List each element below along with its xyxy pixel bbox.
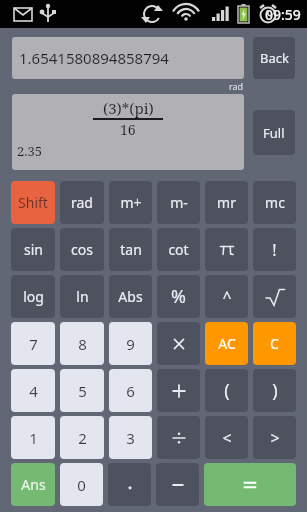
- staticText: 1.6541580894858794: [19, 48, 169, 68]
- button[interactable]: >: [253, 416, 296, 459]
- button[interactable]: 3: [109, 416, 152, 459]
- button[interactable]: Shift: [11, 181, 55, 224]
- button[interactable]: tan: [109, 228, 152, 271]
- staticText: cos: [71, 240, 93, 259]
- button[interactable]: ): [253, 369, 296, 412]
- staticText: 7: [29, 334, 38, 354]
- staticText: 8: [78, 334, 87, 354]
- staticText: 9: [126, 334, 135, 354]
- staticText: 4: [29, 381, 38, 401]
- staticText: mr: [217, 193, 236, 212]
- button[interactable]: AC: [205, 322, 248, 365]
- button[interactable]: rad: [60, 181, 104, 224]
- staticText: Shift: [18, 193, 48, 212]
- staticText: 6: [126, 381, 135, 401]
- staticText: Back: [260, 49, 289, 67]
- staticText: %: [171, 284, 186, 309]
- staticText: Full: [263, 124, 285, 142]
- button[interactable]: mc: [253, 181, 296, 224]
- button[interactable]: 5: [60, 369, 104, 412]
- button[interactable]: (: [205, 369, 248, 412]
- button[interactable]: m-: [157, 181, 200, 224]
- button[interactable]: 8: [60, 322, 104, 365]
- button[interactable]: 9: [109, 322, 152, 365]
- button[interactable]: Pi: [205, 228, 248, 271]
- button[interactable]: !: [253, 228, 296, 271]
- button[interactable]: Back: [253, 37, 295, 79]
- staticText: AC: [218, 334, 236, 353]
- button[interactable]: Decimal point: [108, 463, 151, 506]
- staticText: 1: [29, 428, 38, 448]
- staticText: rad: [229, 80, 244, 92]
- button[interactable]: Ans: [11, 463, 55, 506]
- staticText: 0: [77, 475, 86, 495]
- button[interactable]: Full: [253, 110, 295, 155]
- button[interactable]: 6: [109, 369, 152, 412]
- button[interactable]: mr: [205, 181, 248, 224]
- button[interactable]: 2: [60, 416, 104, 459]
- button[interactable]: 1: [11, 416, 55, 459]
- staticText: ): [272, 378, 278, 403]
- button[interactable]: 0: [60, 463, 103, 506]
- button[interactable]: Plus: [157, 369, 200, 412]
- button[interactable]: 4: [11, 369, 55, 412]
- button[interactable]: C: [253, 322, 296, 365]
- button[interactable]: Abs: [109, 275, 152, 318]
- staticText: 16: [120, 120, 136, 139]
- button[interactable]: Divide: [157, 416, 200, 459]
- button[interactable]: Multiply: [157, 322, 200, 365]
- button[interactable]: (3)*(pi): [12, 94, 244, 170]
- button[interactable]: 7: [11, 322, 55, 365]
- staticText: m-: [170, 193, 188, 212]
- button[interactable]: Minus: [156, 463, 199, 506]
- staticText: ln: [76, 287, 89, 306]
- button[interactable]: Square root: [253, 275, 296, 318]
- staticText: Abs: [118, 287, 143, 306]
- staticText: <: [222, 427, 232, 449]
- button[interactable]: cos: [60, 228, 104, 271]
- button[interactable]: ^: [205, 275, 248, 318]
- button[interactable]: ln: [60, 275, 104, 318]
- button[interactable]: 1.6541580894858794: [12, 37, 244, 79]
- button[interactable]: %: [157, 275, 200, 318]
- staticText: ^: [222, 286, 232, 308]
- button[interactable]: log: [11, 275, 55, 318]
- staticText: 2: [78, 428, 87, 448]
- button[interactable]: cot: [157, 228, 200, 271]
- staticText: mc: [265, 193, 285, 212]
- staticText: sin: [24, 240, 43, 259]
- staticText: (3)*(pi): [103, 98, 154, 118]
- staticText: >: [270, 427, 280, 449]
- staticText: Ans: [21, 475, 46, 494]
- button[interactable]: <: [205, 416, 248, 459]
- staticText: tan: [120, 240, 142, 259]
- button[interactable]: sin: [11, 228, 55, 271]
- staticText: 5: [78, 381, 87, 401]
- staticText: log: [23, 287, 44, 306]
- staticText: m+: [120, 193, 142, 212]
- staticText: 3: [126, 428, 135, 448]
- button[interactable]: Equals: [204, 463, 296, 506]
- staticText: cot: [168, 240, 189, 259]
- staticText: !: [272, 239, 277, 261]
- staticText: C: [270, 334, 279, 353]
- staticText: 09:59: [265, 5, 301, 24]
- staticText: 2.35: [17, 142, 43, 160]
- button[interactable]: m+: [109, 181, 152, 224]
- staticText: (: [224, 378, 230, 403]
- staticText: rad: [71, 193, 93, 212]
